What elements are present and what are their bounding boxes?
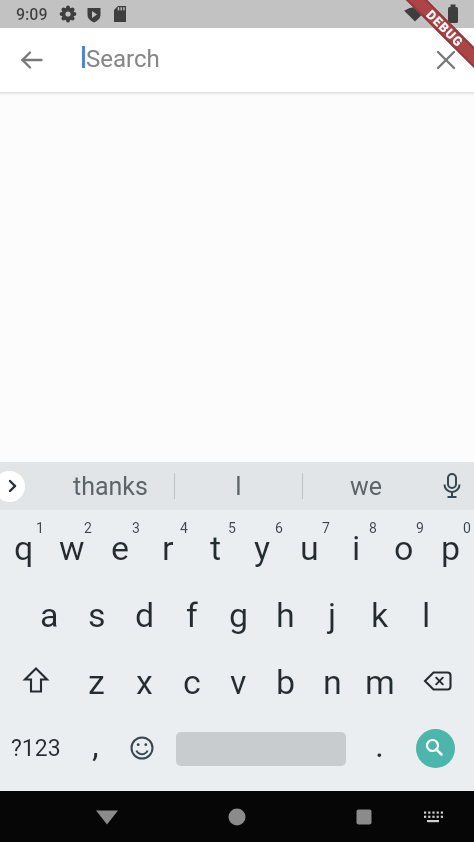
button[interactable] [430,462,474,510]
staticText: u [300,528,319,568]
staticText: 7 [322,520,330,536]
button[interactable] [340,793,388,841]
button[interactable]: d [121,581,168,648]
staticText: m [365,662,395,702]
button[interactable] [119,715,166,782]
button[interactable]: v [215,648,262,715]
staticText: DEBUG [423,7,466,50]
button[interactable]: , [72,715,119,782]
staticText: 4 [180,520,188,536]
staticText: j [328,595,337,635]
button[interactable]: e [96,514,144,581]
staticText: 6 [275,520,283,536]
button[interactable]: c [168,648,215,715]
staticText: y [254,528,271,568]
button[interactable] [0,648,72,715]
staticText: z [88,662,105,702]
staticText: n [323,662,342,702]
staticText: c [183,662,201,702]
staticText: k [371,595,389,635]
staticText: , [92,725,99,765]
button[interactable] [413,797,453,837]
button[interactable]: y [239,514,286,581]
staticText: t [210,528,222,568]
button[interactable]: h [262,581,309,648]
button[interactable]: we [303,462,430,510]
staticText: s [88,595,106,635]
button[interactable]: j [309,581,356,648]
staticText: q [14,528,34,568]
button[interactable]: . [356,715,403,782]
button[interactable]: r [144,514,192,581]
button[interactable] [403,648,474,715]
button[interactable] [0,471,25,502]
button[interactable] [422,36,470,84]
staticText: l [422,595,431,635]
button[interactable]: n [309,648,356,715]
staticText: I [235,472,242,501]
staticText: x [136,662,153,702]
staticText: f [186,595,198,635]
staticText: i [352,528,361,568]
staticText: g [229,595,249,635]
staticText: w [59,528,85,568]
button[interactable] [8,36,56,84]
staticText: 3 [132,520,140,536]
button[interactable]: b [262,648,309,715]
button[interactable]: I [175,462,302,510]
button[interactable]: k [356,581,403,648]
staticText: 8 [369,520,377,536]
button[interactable] [213,793,261,841]
staticText: 5 [228,520,236,536]
staticText: 9:09 [16,5,48,24]
button[interactable] [83,793,131,841]
staticText: d [135,595,155,635]
staticText: o [394,528,414,568]
button[interactable] [166,715,356,782]
staticText: 9 [416,520,424,536]
staticText: 2 [84,520,92,536]
button[interactable]: l [403,581,450,648]
button[interactable]: q [0,514,48,581]
button[interactable]: t [192,514,239,581]
staticText: we [350,472,383,501]
staticText: a [40,595,59,635]
button[interactable]: thanks [46,462,174,510]
staticText: 0 [463,520,471,536]
button[interactable]: u [286,514,333,581]
button[interactable]: s [73,581,121,648]
button[interactable]: z [72,648,120,715]
staticText: Search [86,45,160,73]
staticText: 1 [36,520,44,536]
button[interactable]: a [25,581,73,648]
button[interactable]: i [333,514,380,581]
staticText: r [162,528,174,568]
button[interactable] [403,715,474,782]
staticText: e [111,528,130,568]
button[interactable]: m [356,648,403,715]
staticText: b [276,662,296,702]
staticText: . [375,725,384,765]
button[interactable]: w [48,514,96,581]
staticText: p [441,528,461,568]
staticText: ?123 [11,735,61,762]
button[interactable]: o [380,514,427,581]
button[interactable]: ?123 [0,715,72,782]
staticText: h [276,595,295,635]
button[interactable]: p [427,514,474,581]
button[interactable]: g [215,581,262,648]
button[interactable]: f [168,581,215,648]
button[interactable]: x [120,648,168,715]
staticText: v [230,662,247,702]
staticText: thanks [73,472,148,501]
